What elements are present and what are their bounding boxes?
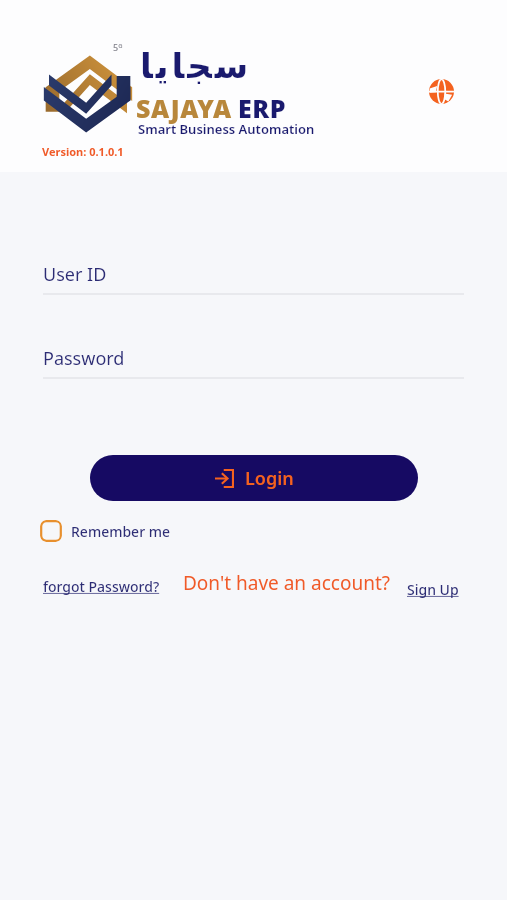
staticText: SAJAYA — [136, 91, 232, 125]
staticText: Smart Business Automation — [138, 120, 315, 138]
staticText: سجايا — [140, 46, 252, 86]
button[interactable]: forgot Password? — [40, 575, 163, 598]
staticText: 5ᴳ — [113, 41, 123, 53]
staticText: Don't have an account? — [183, 570, 391, 596]
button[interactable]: Login — [90, 455, 418, 501]
staticText: User ID — [43, 262, 107, 287]
button[interactable]: Sign Up — [404, 578, 462, 601]
staticText: ERP — [238, 91, 286, 125]
staticText: Remember me — [71, 522, 171, 541]
button[interactable]: Remember me — [40, 515, 171, 547]
staticText: Version: 0.1.0.1 — [42, 144, 124, 159]
staticText: Sign Up — [407, 580, 459, 599]
staticText: forgot Password? — [43, 577, 160, 596]
staticText: Login — [245, 466, 294, 491]
staticText: Password — [43, 346, 125, 371]
button[interactable]: Change language — [421, 71, 461, 111]
